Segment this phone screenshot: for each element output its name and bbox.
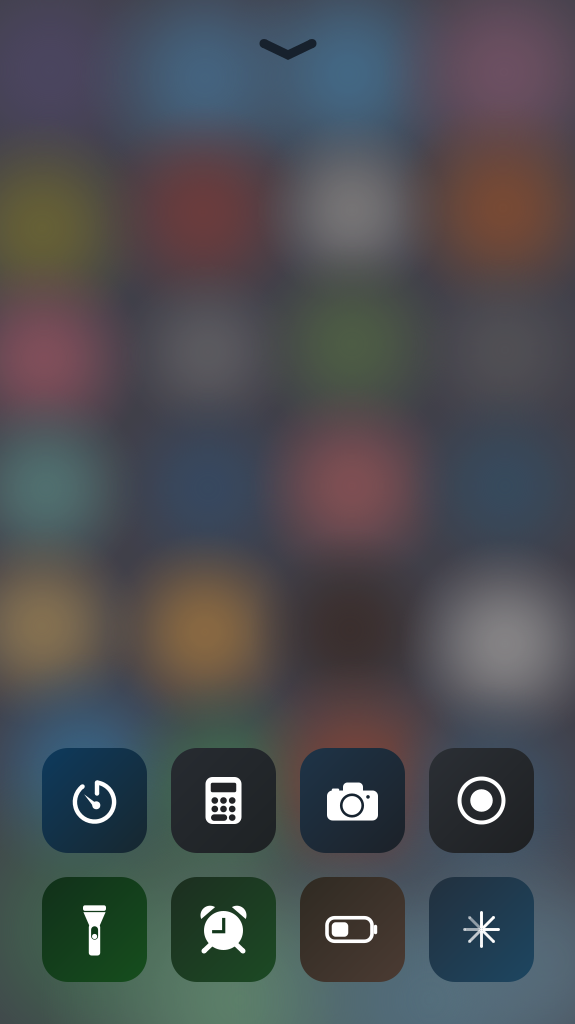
button[interactable]: Calculator xyxy=(171,748,276,853)
button[interactable]: Screen Recording xyxy=(429,748,534,853)
button[interactable]: Camera xyxy=(300,748,405,853)
button[interactable]: Timer xyxy=(42,748,147,853)
button[interactable]: Low Power Mode xyxy=(300,877,405,982)
button[interactable]: Close Control Center xyxy=(236,24,340,76)
button[interactable]: Alarm xyxy=(171,877,276,982)
button[interactable]: Appearance xyxy=(429,877,534,982)
button[interactable]: Flashlight xyxy=(42,877,147,982)
